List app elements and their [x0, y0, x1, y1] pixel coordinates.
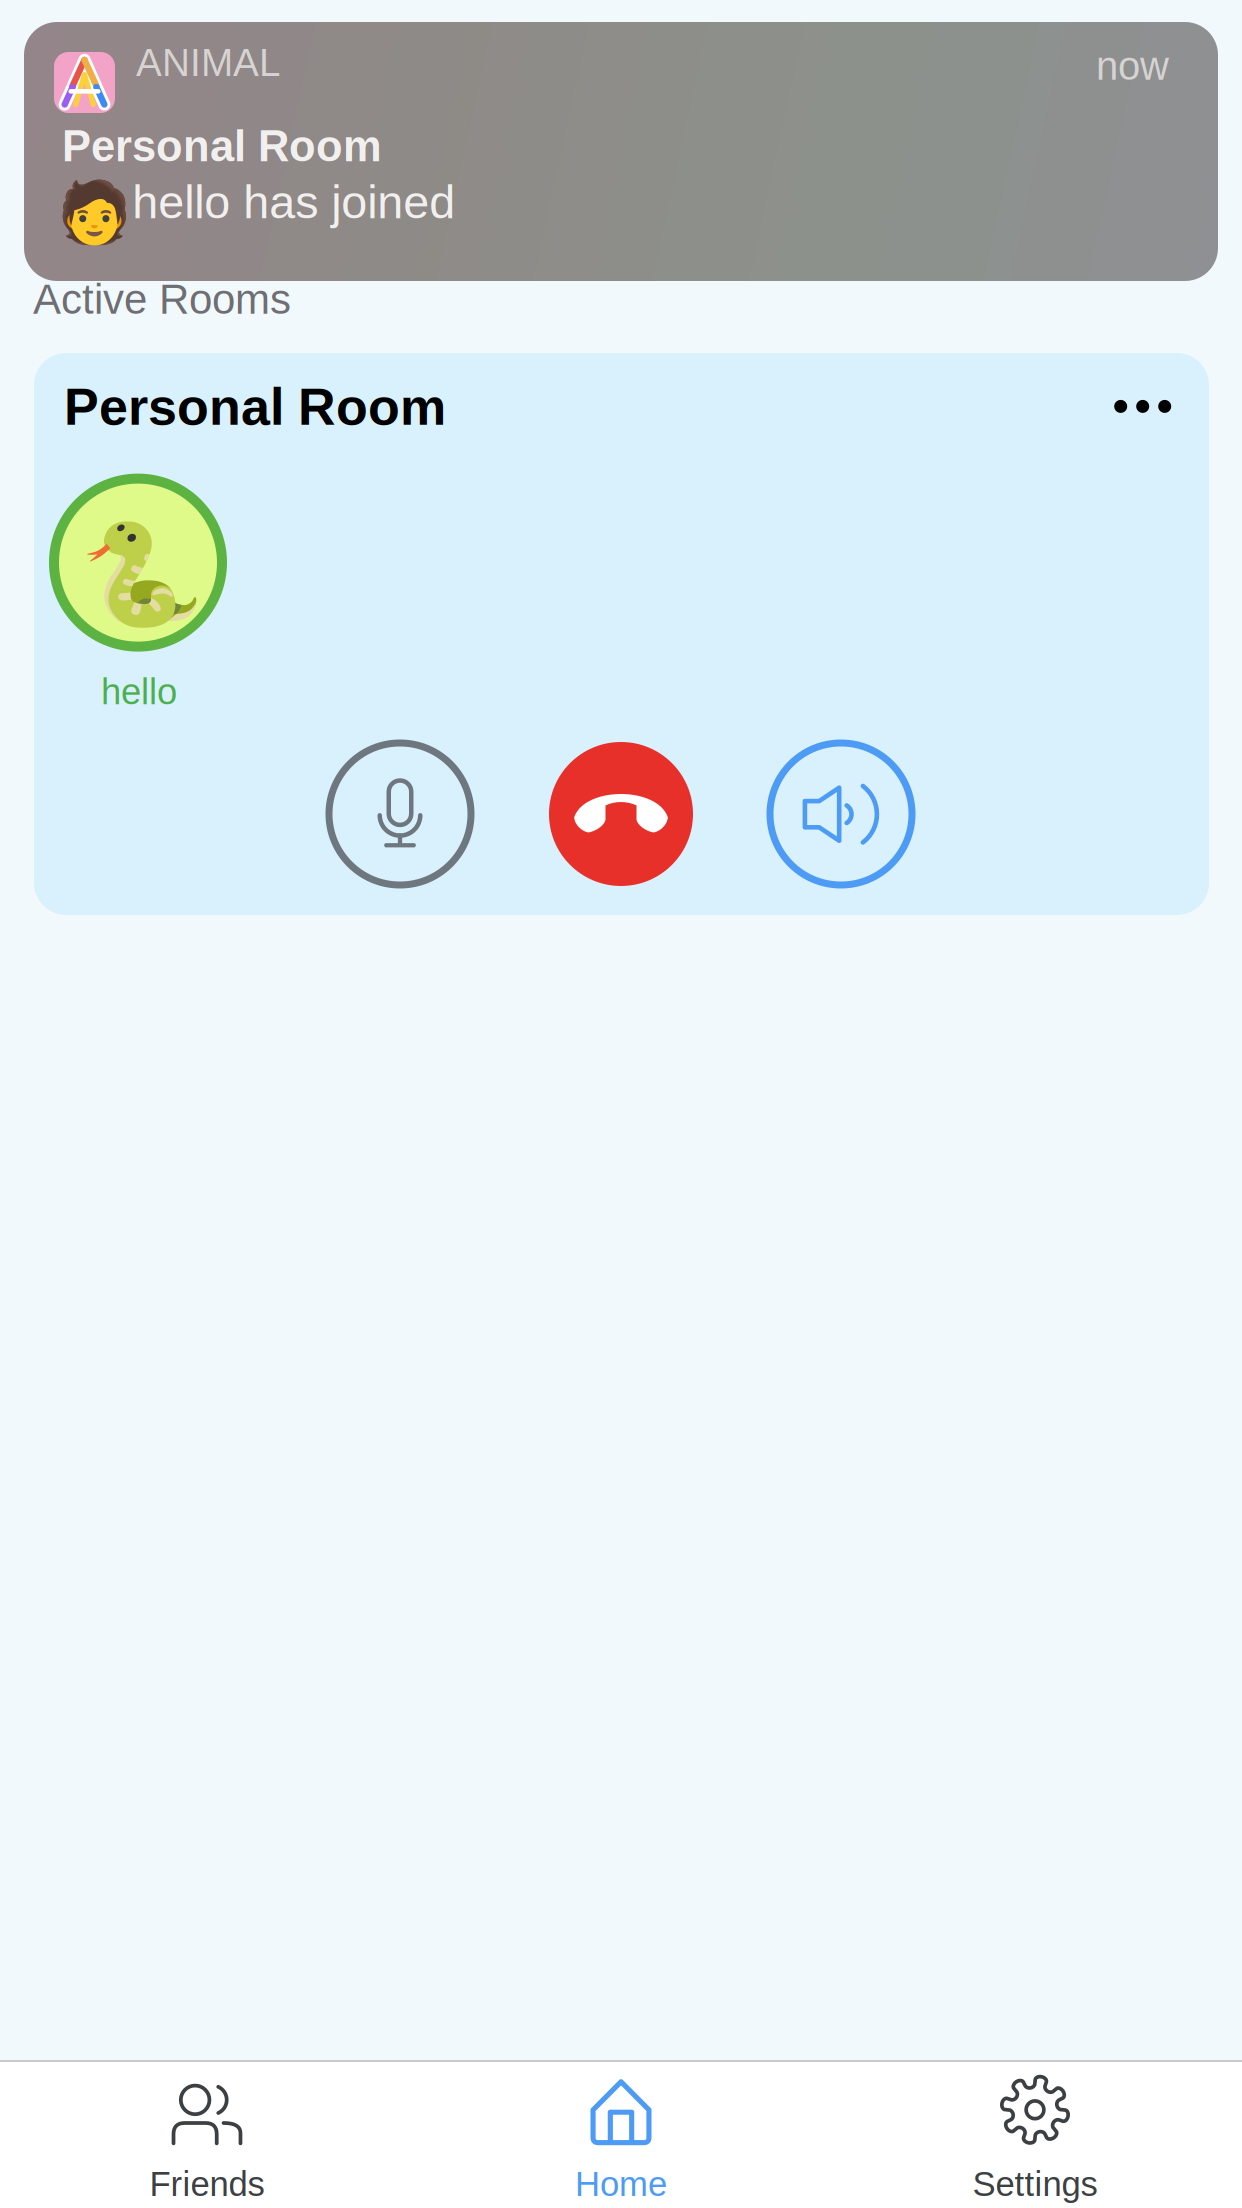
staticText: hello has joined: [132, 176, 455, 228]
button[interactable]: Settings: [828, 2062, 1242, 2208]
staticText: Settings: [972, 2165, 1097, 2203]
button[interactable]: Mute microphone: [329, 743, 471, 885]
button[interactable]: More options: [1092, 333, 1149, 413]
button[interactable]: Leave room: [549, 742, 693, 886]
staticText: Personal Room: [64, 378, 446, 436]
staticText: Personal Room: [62, 122, 382, 171]
staticText: 🐍: [80, 517, 205, 634]
button[interactable]: Friends: [0, 2062, 414, 2208]
staticText: Active Rooms: [33, 276, 291, 323]
staticText: ANIMAL: [136, 41, 281, 84]
staticText: hello: [101, 671, 177, 712]
staticText: 🧑: [57, 177, 132, 247]
button[interactable]: Speaker: [770, 743, 912, 885]
staticText: Home: [575, 2165, 667, 2203]
staticText: Friends: [149, 2165, 264, 2203]
staticText: now: [1096, 44, 1169, 88]
button[interactable]: Home: [414, 2062, 828, 2208]
